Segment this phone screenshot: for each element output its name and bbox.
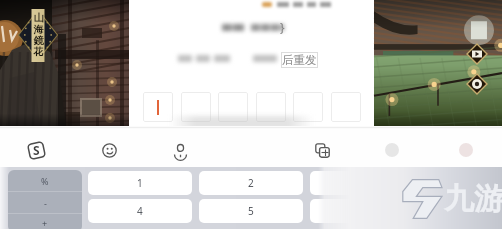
- staticText: %: [41, 175, 49, 187]
- staticText: 后重发: [282, 53, 317, 67]
- button[interactable]: 2: [199, 171, 303, 195]
- button[interactable]: [181, 92, 211, 122]
- button[interactable]: %: [8, 170, 82, 191]
- button[interactable]: 6: [310, 199, 414, 223]
- button[interactable]: [218, 92, 248, 122]
- staticText: 4: [137, 204, 143, 218]
- staticText: 2: [248, 176, 254, 190]
- staticText: +: [42, 217, 48, 229]
- button[interactable]: [256, 92, 286, 122]
- button[interactable]: 4: [88, 199, 192, 223]
- button[interactable]: 后重发: [281, 52, 318, 68]
- button[interactable]: [143, 92, 173, 122]
- staticText: 5: [248, 204, 254, 218]
- button[interactable]: Input method: [25, 139, 47, 161]
- button[interactable]: +: [8, 214, 82, 229]
- staticText: 1: [137, 176, 143, 190]
- button[interactable]: 5: [199, 199, 303, 223]
- button[interactable]: Settings: [467, 74, 487, 94]
- staticText: 山海鏡花: [33, 11, 44, 58]
- button[interactable]: [331, 92, 361, 122]
- staticText: S: [33, 142, 40, 158]
- button[interactable]: Translate: [311, 139, 333, 161]
- button[interactable]: Emoji: [98, 139, 120, 161]
- button[interactable]: [293, 92, 323, 122]
- button[interactable]: 3: [310, 171, 414, 195]
- button[interactable]: Video: [467, 44, 487, 64]
- button[interactable]: Search: [381, 139, 403, 161]
- staticText: 九游: [444, 180, 502, 218]
- button[interactable]: 1: [88, 171, 192, 195]
- button[interactable]: Voice input: [169, 139, 191, 161]
- button[interactable]: Settings: [455, 139, 477, 161]
- staticText: }: [280, 19, 285, 35]
- staticText: -: [44, 197, 47, 209]
